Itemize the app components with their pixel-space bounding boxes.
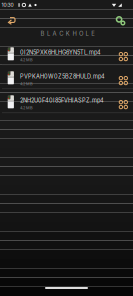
staticText: 4.2 MB: [20, 105, 33, 110]
button[interactable]: 0I2N5PXK6HLHG6YN5TL.mp4: [0, 41, 133, 65]
staticText: 4.2 MB: [20, 81, 33, 86]
button[interactable]: Back: [0, 10, 16, 28]
staticText: 0I2N5PXK6HLHG6YN5TL.mp4: [20, 49, 101, 56]
staticText: BLACKHOLE: [40, 30, 95, 37]
button[interactable]: 2NH2U0F40I85FVHIASPZ.mp4: [0, 89, 133, 113]
staticText: 10:30: [1, 2, 13, 8]
staticText: 2NH2U0F40I85FVHIASPZ.mp4: [20, 97, 104, 104]
button[interactable]: Settings: [114, 9, 133, 29]
staticText: 4.2 MB: [20, 57, 33, 62]
button[interactable]: PVPKAH0W0Z5BZ8HULD.mp4: [0, 65, 133, 89]
staticText: PVPKAH0W0Z5BZ8HULD.mp4: [20, 73, 105, 80]
